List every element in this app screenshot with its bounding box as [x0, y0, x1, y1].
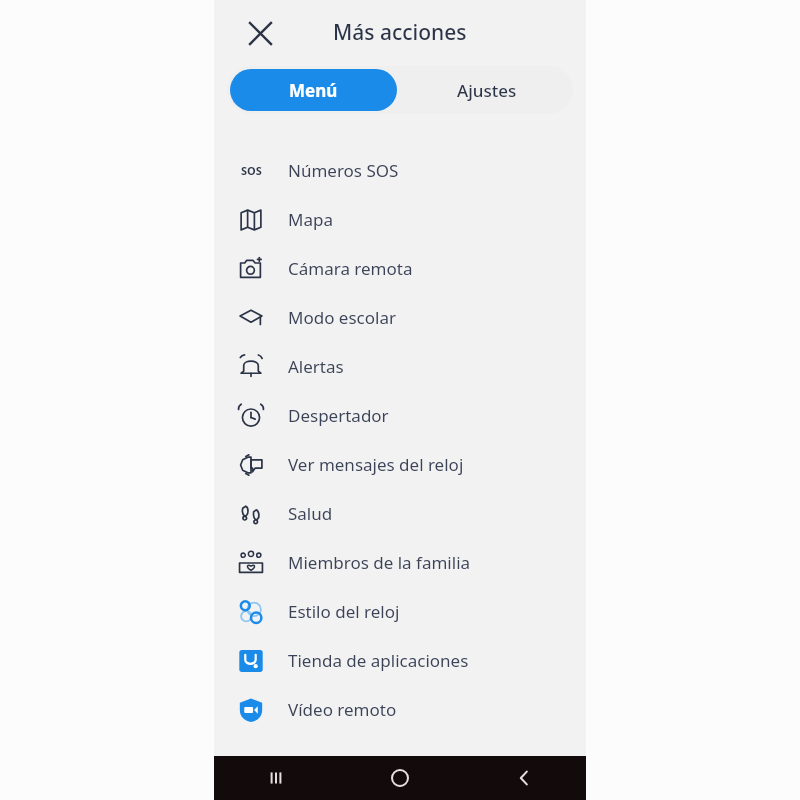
button[interactable]: Salud — [214, 489, 586, 538]
button[interactable]: Modo escolar — [214, 293, 586, 342]
button[interactable]: Cerrar — [232, 5, 288, 61]
button[interactable]: Estilo del reloj — [214, 587, 586, 636]
button[interactable]: Ajustes — [400, 66, 573, 114]
staticText: Más acciones — [333, 18, 467, 47]
button[interactable]: Despertador — [214, 391, 586, 440]
staticText: Ver mensajes del reloj — [288, 453, 464, 476]
staticText: Salud — [288, 502, 333, 525]
staticText: Ajustes — [457, 79, 517, 102]
staticText: Alertas — [288, 355, 344, 378]
staticText: Cámara remota — [288, 257, 413, 280]
button[interactable]: Cámara remota — [214, 244, 586, 293]
staticText: SOS — [241, 163, 262, 178]
staticText: Tienda de aplicaciones — [288, 649, 469, 672]
staticText: Mapa — [288, 208, 333, 231]
staticText: Vídeo remoto — [288, 698, 397, 721]
button[interactable]: Miembros de la familia — [214, 538, 586, 587]
button[interactable]: Tienda de aplicaciones — [214, 636, 586, 685]
button[interactable]: Inicio — [338, 756, 462, 800]
button[interactable]: Vídeo remoto — [214, 685, 586, 734]
staticText: Modo escolar — [288, 306, 396, 329]
button[interactable]: SOS — [214, 146, 586, 195]
button[interactable]: Ver mensajes del reloj — [214, 440, 586, 489]
button[interactable]: Atrás — [462, 756, 586, 800]
staticText: Estilo del reloj — [288, 600, 400, 623]
button[interactable]: Alertas — [214, 342, 586, 391]
staticText: Despertador — [288, 404, 389, 427]
button[interactable]: Mapa — [214, 195, 586, 244]
button[interactable]: Menú — [230, 69, 397, 111]
button[interactable]: Recientes — [214, 756, 338, 800]
staticText: Miembros de la familia — [288, 551, 471, 574]
staticText: Números SOS — [288, 159, 399, 182]
staticText: Menú — [289, 79, 338, 102]
